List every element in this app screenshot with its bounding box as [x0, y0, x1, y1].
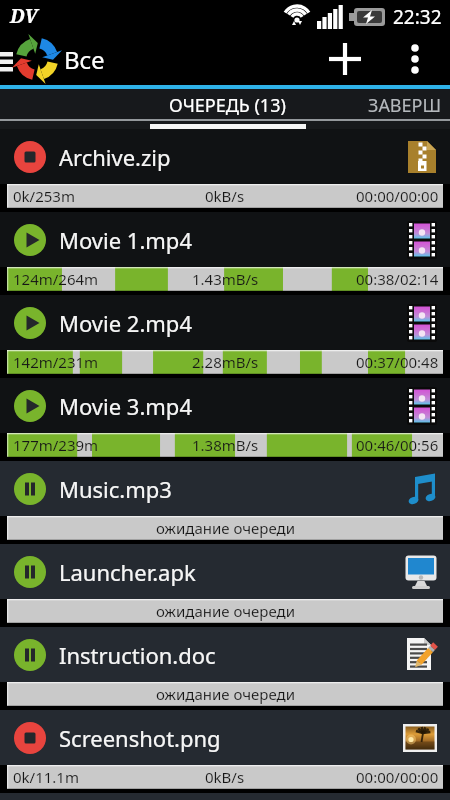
button[interactable]: ожидание очереди: [7, 599, 443, 623]
staticText: 00:00/00:00: [356, 767, 439, 787]
staticText: 00:38/02:14: [356, 269, 439, 289]
staticText: 2.28mB/s: [192, 352, 259, 372]
button[interactable]: [394, 33, 436, 85]
button[interactable]: [325, 33, 365, 85]
staticText: ожидание очереди: [156, 684, 295, 704]
button[interactable]: 177m/239m: [7, 433, 443, 457]
button[interactable]: ожидание очереди: [7, 682, 443, 706]
button[interactable]: Все: [64, 43, 105, 76]
button[interactable]: Instruction.doc: [0, 627, 450, 682]
staticText: 00:00/00:00: [356, 186, 439, 206]
staticText: Instruction.doc: [59, 640, 216, 670]
staticText: Archive.zip: [59, 142, 171, 172]
staticText: Screenshot.png: [59, 723, 221, 753]
button[interactable]: Movie 1.mp4: [0, 212, 450, 267]
staticText: 142m/231m: [13, 352, 99, 372]
staticText: 124m/264m: [13, 269, 99, 289]
button[interactable]: Movie 3.mp4: [0, 378, 450, 433]
staticText: 00:46/00:56: [356, 435, 439, 455]
staticText: ОЧЕРЕДЬ (13): [169, 93, 286, 118]
staticText: 1.43mB/s: [192, 269, 259, 289]
staticText: 0k/253m: [13, 186, 75, 206]
staticText: Movie 2.mp4: [59, 308, 192, 338]
button[interactable]: Music.mp3: [0, 461, 450, 516]
button[interactable]: Launcher.apk: [0, 544, 450, 599]
button[interactable]: Movie 2.mp4: [0, 295, 450, 350]
staticText: 0kB/s: [205, 767, 245, 787]
staticText: Movie 3.mp4: [59, 391, 192, 421]
staticText: ЗАВЕРШ: [368, 93, 442, 118]
button[interactable]: ОЧЕРЕДЬ (13): [169, 93, 286, 118]
staticText: Music.mp3: [59, 474, 172, 504]
staticText: DV: [10, 3, 38, 29]
staticText: 0k/11.1m: [13, 767, 79, 787]
staticText: 22:32: [393, 4, 442, 30]
staticText: Launcher.apk: [59, 557, 196, 587]
button[interactable]: Archive.zip: [0, 129, 450, 184]
button[interactable]: Screenshot.png: [0, 710, 450, 765]
staticText: 00:37/00:48: [356, 352, 439, 372]
staticText: 177m/239m: [13, 435, 99, 455]
button[interactable]: 142m/231m: [7, 350, 443, 374]
button[interactable]: [14, 36, 60, 82]
staticText: 0kB/s: [205, 186, 245, 206]
button[interactable]: 0k/253m: [7, 184, 443, 208]
button[interactable]: 0k/11.1m: [7, 765, 443, 789]
staticText: 1.38mB/s: [192, 435, 259, 455]
button[interactable]: 124m/264m: [7, 267, 443, 291]
button[interactable]: ЗАВЕРШ: [368, 93, 442, 118]
staticText: ожидание очереди: [156, 601, 295, 621]
staticText: Movie 1.mp4: [59, 225, 192, 255]
staticText: ожидание очереди: [156, 518, 295, 538]
button[interactable]: ожидание очереди: [7, 516, 443, 540]
